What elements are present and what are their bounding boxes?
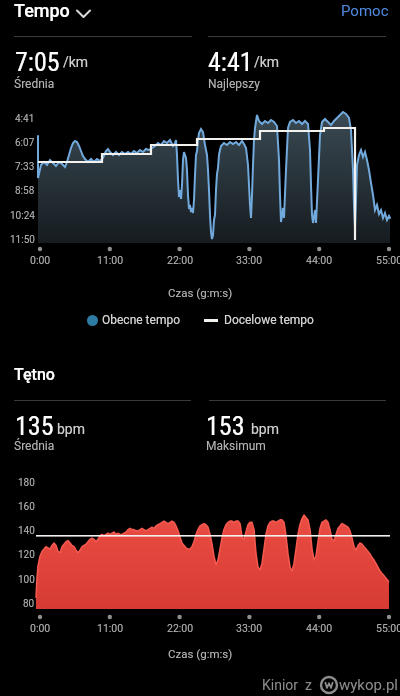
staticText: Czas (g:m:s): [168, 286, 233, 299]
staticText: 4:41: [15, 113, 35, 125]
staticText: Tętno: [14, 365, 55, 384]
staticText: Pomoc: [341, 2, 389, 20]
staticText: Maksimum: [206, 439, 266, 453]
staticText: Docelowe tempo: [224, 313, 314, 327]
staticText: bpm: [251, 421, 279, 437]
staticText: /km: [63, 54, 89, 70]
staticText: bpm: [57, 421, 85, 437]
staticText: Tempo: [14, 0, 70, 21]
staticText: 140: [18, 525, 35, 537]
staticText: 11:00: [97, 622, 124, 634]
staticText: 44:00: [306, 254, 333, 266]
staticText: 11:50: [10, 234, 35, 246]
staticText: 22:00: [167, 254, 194, 266]
staticText: 80: [23, 598, 35, 610]
staticText: 0:00: [30, 254, 51, 266]
staticText: 7:05: [15, 47, 60, 77]
staticText: Czas (g:m:s): [168, 647, 233, 660]
staticText: Kinior z: [262, 677, 319, 693]
staticText: 33:00: [236, 254, 263, 266]
staticText: Średnia: [14, 77, 55, 91]
staticText: 33:00: [236, 622, 263, 634]
staticText: 44:00: [306, 622, 333, 634]
staticText: 180: [18, 477, 35, 489]
staticText: 55:00: [376, 254, 400, 266]
staticText: wykop.pl: [339, 676, 398, 694]
staticText: 100: [18, 574, 35, 586]
staticText: 0:00: [30, 622, 51, 634]
staticText: Najlepszy: [208, 77, 260, 91]
staticText: 10:24: [10, 210, 35, 222]
staticText: 8:58: [15, 185, 35, 197]
staticText: 120: [18, 549, 35, 561]
button[interactable]: Tempo: [14, 0, 70, 21]
staticText: Obecne tempo: [102, 313, 180, 327]
staticText: /km: [254, 54, 280, 70]
staticText: 4:41: [208, 47, 253, 77]
staticText: 22:00: [167, 622, 194, 634]
button[interactable]: Pomoc: [341, 2, 389, 20]
staticText: 153: [206, 411, 245, 441]
staticText: 11:00: [97, 254, 124, 266]
staticText: 7:33: [15, 161, 35, 173]
staticText: 6:07: [15, 137, 35, 149]
staticText: Średnia: [14, 439, 55, 453]
staticText: 55:00: [376, 622, 400, 634]
staticText: 160: [18, 501, 35, 513]
staticText: 135: [15, 411, 54, 441]
